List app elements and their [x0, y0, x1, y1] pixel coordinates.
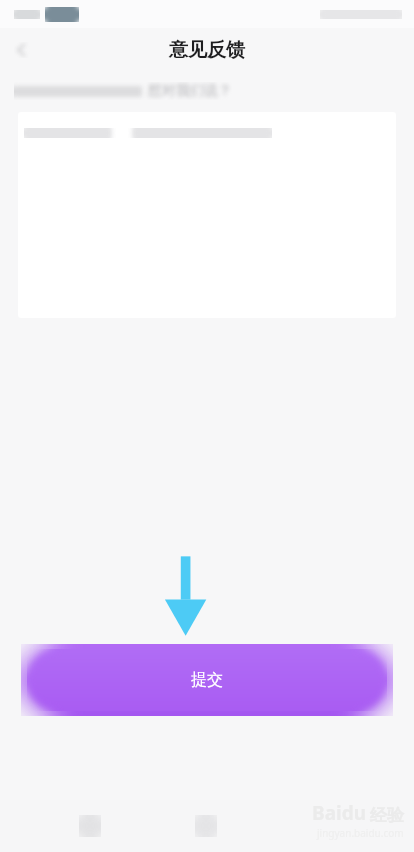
staticText: 提交 [191, 670, 223, 690]
staticText: 经验 [370, 805, 404, 826]
staticText: 想对我们说？ [148, 82, 232, 100]
button[interactable]: Nav item 2 [178, 800, 234, 852]
staticText: Baidu [312, 800, 367, 826]
button[interactable]: Nav item 1 [62, 800, 118, 852]
button[interactable]: 提交 [21, 645, 393, 715]
staticText: 意见反馈 [169, 38, 245, 62]
button[interactable] [18, 112, 396, 318]
